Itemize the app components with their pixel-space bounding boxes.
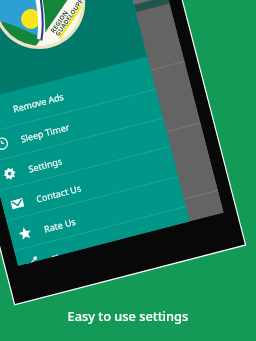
button[interactable]	[0, 0, 256, 341]
